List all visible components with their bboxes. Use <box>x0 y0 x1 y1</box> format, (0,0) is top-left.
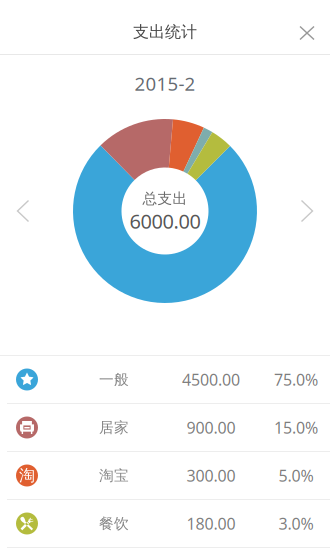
staticText: 总支出 <box>142 190 187 208</box>
staticText: 180.00 <box>186 513 235 534</box>
staticText: 居家 <box>99 418 129 436</box>
staticText: 淘宝 <box>99 466 129 484</box>
staticText: 一般 <box>99 370 129 388</box>
staticText: 餐饮 <box>99 514 129 532</box>
button[interactable]: 餐饮 <box>0 500 330 548</box>
button[interactable]: Close <box>284 10 330 56</box>
staticText: 6000.00 <box>129 208 200 234</box>
staticText: 75.0% <box>274 369 318 390</box>
button[interactable]: 淘 <box>0 452 330 500</box>
staticText: 4500.00 <box>182 369 240 390</box>
button[interactable]: 一般 <box>0 356 330 404</box>
staticText: 3.0% <box>278 513 313 534</box>
button[interactable]: Previous month <box>0 188 46 234</box>
staticText: 淘 <box>19 466 35 485</box>
staticText: 900.00 <box>186 417 235 438</box>
staticText: 2015-2 <box>134 71 195 96</box>
button[interactable]: 居家 <box>0 404 330 452</box>
button[interactable]: Next month <box>284 188 330 234</box>
staticText: 300.00 <box>186 465 235 486</box>
staticText: 5.0% <box>278 465 313 486</box>
staticText: 15.0% <box>274 417 318 438</box>
staticText: 支出统计 <box>133 22 197 42</box>
